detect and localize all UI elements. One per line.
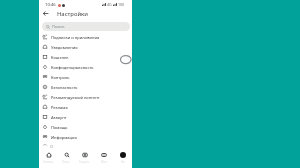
button[interactable]: Create	[75, 149, 94, 168]
button[interactable]: Рекомендуемый контент	[39, 92, 132, 102]
button[interactable]: Back	[40, 8, 50, 18]
staticText: Настройки	[57, 10, 88, 18]
staticText: Информация	[51, 135, 77, 140]
button[interactable]: Уведомления	[39, 42, 132, 52]
staticText: Безопасность	[51, 85, 78, 90]
button[interactable]: Account	[113, 149, 132, 168]
staticText: О	[50, 144, 53, 149]
staticText: Рекомендуемый контент	[51, 95, 100, 100]
button[interactable]: Subscriptions	[94, 149, 113, 168]
button[interactable]: Безопасность	[39, 82, 132, 92]
button[interactable]: Подписки и приложения	[39, 32, 132, 42]
button[interactable]: Реклама	[39, 102, 132, 112]
staticText: Аккаунт	[51, 115, 67, 120]
staticText: Поиск	[52, 24, 65, 30]
staticText: Мои	[101, 160, 107, 164]
staticText: 100	[118, 2, 125, 7]
button[interactable]: Помощь	[39, 122, 132, 132]
button[interactable]: О	[39, 141, 132, 151]
staticText: 10:46	[45, 2, 56, 8]
staticText: Поиск	[62, 160, 70, 164]
staticText: Вы	[121, 160, 125, 164]
button[interactable]: Контроль	[39, 72, 132, 82]
button[interactable]: Конфиденциальность	[39, 62, 132, 72]
staticText: 4G	[107, 2, 112, 7]
button[interactable]: Search	[57, 149, 75, 168]
staticText: Главная	[43, 160, 54, 164]
staticText: Подписки и приложения	[51, 35, 100, 40]
staticText: Помощь	[51, 125, 68, 130]
button[interactable]: Информация	[39, 132, 132, 142]
staticText: Контроль	[51, 75, 70, 80]
button[interactable]: Аккаунт	[39, 112, 132, 122]
button[interactable]: Кошелек	[39, 52, 132, 62]
staticText: Конфиденциальность	[51, 65, 94, 70]
button[interactable]: Home	[39, 149, 57, 168]
staticText: Создать	[79, 160, 90, 164]
staticText: Уведомления	[51, 45, 78, 50]
button[interactable]: Поиск	[42, 22, 130, 31]
staticText: Реклама	[51, 105, 68, 110]
staticText: Кошелек	[51, 55, 69, 60]
